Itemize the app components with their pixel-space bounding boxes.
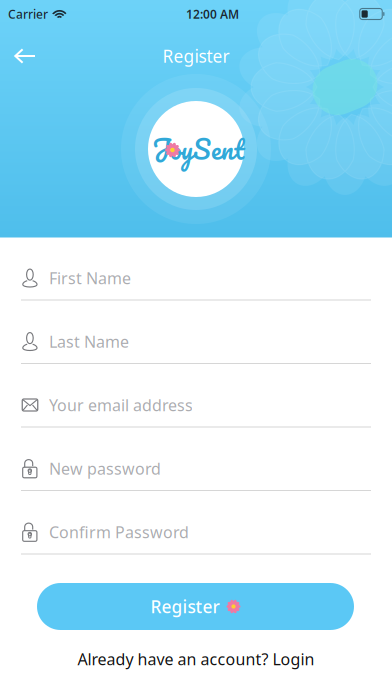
- staticText: New password: [49, 458, 161, 479]
- staticText: Register: [162, 44, 229, 67]
- button[interactable]: Already have an account? Login: [0, 644, 392, 674]
- staticText: JoySent: [152, 127, 244, 171]
- button[interactable]: Confirm Password: [21, 491, 371, 554]
- staticText: Register: [150, 595, 219, 618]
- button[interactable]: Back: [0, 36, 50, 76]
- staticText: Your email address: [49, 394, 193, 416]
- button[interactable]: Last Name: [21, 300, 371, 364]
- staticText: Last Name: [49, 331, 129, 352]
- button[interactable]: First Name: [21, 237, 371, 300]
- button[interactable]: New password: [21, 427, 371, 491]
- staticText: Carrier: [8, 6, 48, 22]
- staticText: 12:00 AM: [186, 6, 239, 22]
- staticText: Confirm Password: [49, 521, 189, 543]
- button[interactable]: Register: [37, 583, 354, 630]
- button[interactable]: Your email address: [21, 364, 371, 427]
- staticText: Already have an account? Login: [77, 648, 314, 670]
- staticText: First Name: [49, 267, 131, 289]
